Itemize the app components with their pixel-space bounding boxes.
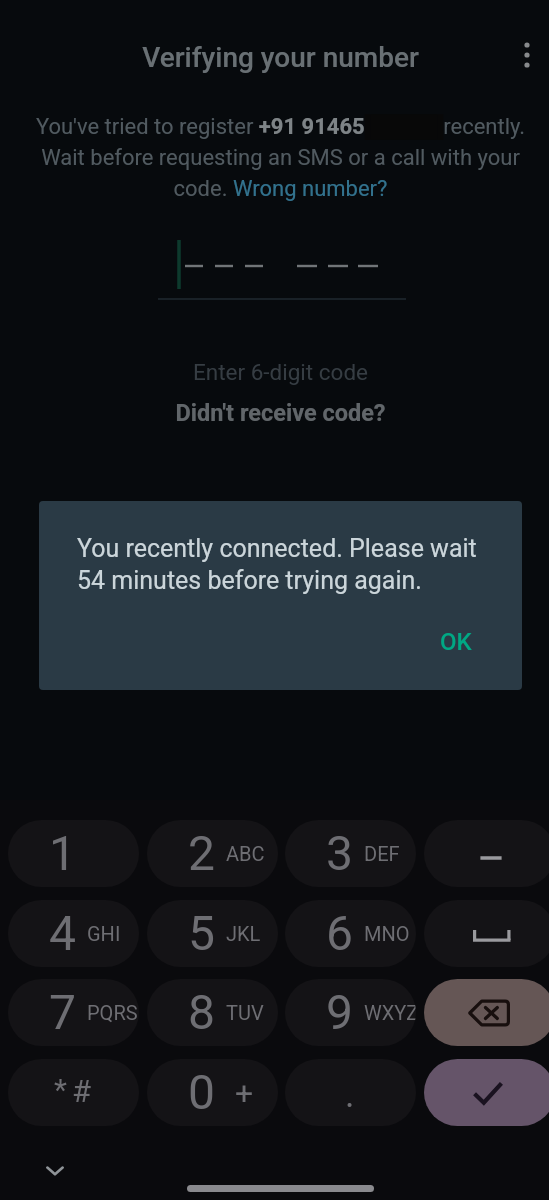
staticText: 8	[188, 984, 215, 1040]
button[interactable]: .	[285, 1059, 416, 1126]
staticText: Enter 6-digit code	[6, 359, 549, 385]
staticText: DEF	[364, 842, 400, 865]
button[interactable]: More options	[505, 33, 549, 77]
button[interactable]: 7	[8, 979, 139, 1046]
staticText: +	[235, 1074, 254, 1112]
staticText: 2	[188, 825, 215, 881]
button[interactable]: 9	[285, 979, 416, 1046]
staticText: *	[54, 1072, 67, 1107]
button[interactable]: Hide keyboard	[33, 1148, 77, 1192]
staticText: OK	[440, 628, 472, 656]
staticText: GHI	[87, 922, 121, 945]
button[interactable]: *	[8, 1059, 139, 1126]
staticText: ABC	[226, 842, 265, 865]
button[interactable]: 2	[147, 820, 278, 887]
button[interactable]: 4	[8, 900, 139, 967]
button[interactable]: 0	[147, 1059, 278, 1126]
button[interactable]: 5	[147, 900, 278, 967]
button[interactable]: Enter	[424, 1059, 549, 1126]
staticText: Wait before requesting an SMS or a call …	[6, 145, 549, 171]
staticText: 1	[49, 825, 76, 881]
button[interactable]: Backspace	[424, 979, 549, 1046]
staticText: Verifying your number	[6, 41, 549, 74]
staticText: .	[345, 1074, 355, 1116]
button[interactable]: Didn't receive code?	[6, 394, 549, 432]
button[interactable]: 3	[285, 820, 416, 887]
staticText: 9	[326, 984, 353, 1040]
staticText: WXYZ	[364, 1001, 416, 1024]
button[interactable]: 8	[147, 979, 278, 1046]
button[interactable]: Dash	[424, 820, 549, 887]
staticText: MNO	[364, 922, 410, 945]
staticText: Didn't receive code?	[175, 399, 386, 427]
staticText: You recently connected. Please wait 54 m…	[77, 534, 489, 595]
staticText: 5	[188, 905, 215, 961]
staticText: 4	[49, 905, 76, 961]
staticText: JKL	[226, 922, 261, 945]
staticText: PQRS	[87, 1001, 138, 1024]
button[interactable]: OK	[430, 620, 482, 664]
staticText: #	[72, 1073, 92, 1109]
staticText: 6	[326, 905, 353, 961]
staticText: You've tried to register +91 91465 ████ …	[6, 114, 549, 140]
button[interactable]: 6	[285, 900, 416, 967]
staticText: 0	[188, 1064, 215, 1120]
button[interactable]: Space	[424, 900, 549, 967]
staticText: 3	[326, 825, 353, 881]
staticText: 7	[49, 984, 76, 1040]
staticText: code. Wrong number?	[6, 176, 549, 202]
staticText: TUV	[226, 1001, 264, 1024]
button[interactable]: 1	[8, 820, 139, 887]
